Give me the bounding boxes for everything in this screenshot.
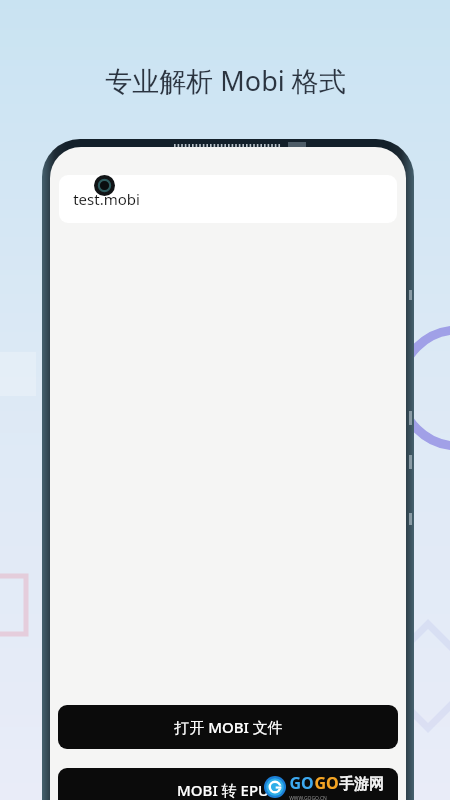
staticText: test.mobi xyxy=(73,189,140,209)
staticText: GO xyxy=(314,772,339,794)
staticText: MOBI 转 EPUB xyxy=(177,780,279,800)
other: Front camera xyxy=(94,175,115,196)
staticText: GO xyxy=(289,772,314,794)
staticText: 专业解析 Mobi 格式 xyxy=(105,62,346,99)
staticText: 打开 MOBI 文件 xyxy=(174,717,283,737)
button[interactable]: MOBI 转 EPUB xyxy=(58,768,398,800)
staticText: 手游网 xyxy=(339,775,384,794)
button[interactable]: 打开 MOBI 文件 xyxy=(58,705,398,749)
staticText: WWW.GOGO.CN xyxy=(289,795,327,800)
button[interactable]: test.mobi xyxy=(59,175,397,223)
